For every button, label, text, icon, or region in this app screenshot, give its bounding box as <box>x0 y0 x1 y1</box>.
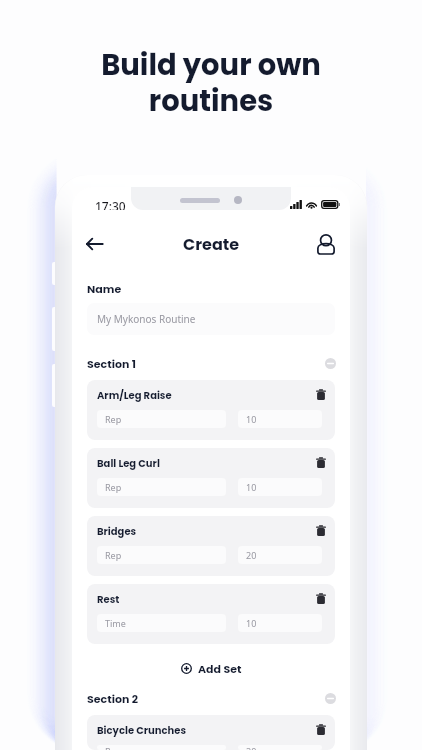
staticText: Rep <box>105 745 122 750</box>
staticText: Name <box>87 281 122 296</box>
button[interactable]: Delete Bicycle Crunches <box>313 723 329 737</box>
staticText: My Mykonos Routine <box>97 312 196 326</box>
button[interactable]: Bicycle Crunches <box>87 715 335 750</box>
button[interactable]: Rest <box>87 584 335 644</box>
button[interactable]: 20 <box>238 546 322 564</box>
button[interactable]: My Mykonos Routine <box>87 303 335 335</box>
button[interactable]: Delete Ball Leg Curl <box>313 456 329 470</box>
staticText: 10 <box>246 617 257 629</box>
staticText: Section 1 <box>87 356 136 371</box>
staticText: Section 2 <box>87 691 138 706</box>
staticText: Ball Leg Curl <box>97 456 160 470</box>
staticText: 10 <box>246 413 257 425</box>
staticText: Create <box>183 233 240 255</box>
staticText: Rep <box>105 413 122 425</box>
button[interactable]: 10 <box>238 478 322 496</box>
button[interactable]: Ball Leg Curl <box>87 448 335 508</box>
button[interactable]: 10 <box>238 410 322 428</box>
staticText: Rest <box>97 592 120 606</box>
button[interactable]: Arm/Leg Raise <box>87 380 335 440</box>
button[interactable]: Collapse Section 1 <box>323 356 338 371</box>
staticText: Bridges <box>97 524 137 538</box>
button[interactable]: Collapse Section 2 <box>323 691 338 706</box>
staticText: Build your own routines <box>101 45 321 122</box>
button[interactable]: Rep <box>97 478 226 496</box>
staticText: Arm/Leg Raise <box>97 388 172 402</box>
button[interactable]: Rep <box>97 410 226 428</box>
button[interactable]: Delete Arm/Leg Raise <box>313 388 329 402</box>
staticText: Add Set <box>198 661 242 676</box>
button[interactable]: Bridges <box>87 516 335 576</box>
button[interactable]: Time <box>97 614 226 632</box>
button[interactable]: Rep <box>97 546 226 564</box>
button[interactable]: Add Set <box>175 659 248 678</box>
button[interactable]: Back <box>81 232 107 256</box>
staticText: Time <box>105 617 126 629</box>
button[interactable]: Profile <box>313 232 339 256</box>
staticText: Rep <box>105 481 122 493</box>
staticText: 20 <box>246 745 257 750</box>
staticText: Bicycle Crunches <box>97 723 187 737</box>
button[interactable]: Delete Rest <box>313 592 329 606</box>
button[interactable]: 20 <box>238 745 322 750</box>
button[interactable]: Delete Bridges <box>313 524 329 538</box>
button[interactable]: 10 <box>238 614 322 632</box>
staticText: 10 <box>246 481 257 493</box>
staticText: Rep <box>105 549 122 561</box>
staticText: 20 <box>246 549 257 561</box>
staticText: 17:30 <box>95 198 126 210</box>
button[interactable]: Rep <box>97 745 226 750</box>
